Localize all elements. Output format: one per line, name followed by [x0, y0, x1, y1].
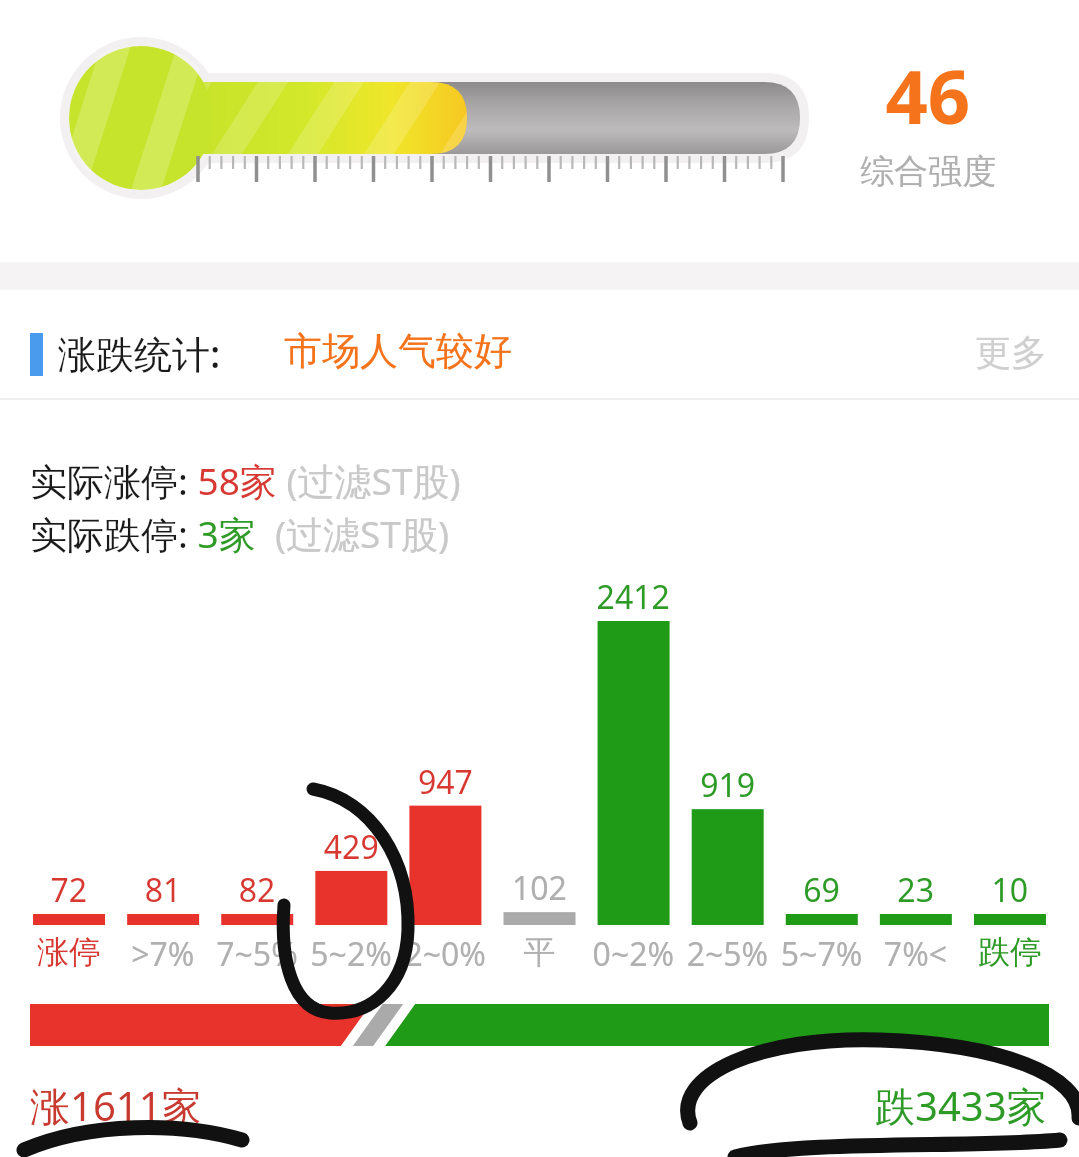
button[interactable]: 综合强度 46 [0, 0, 1079, 262]
button[interactable] [0, 290, 1079, 400]
